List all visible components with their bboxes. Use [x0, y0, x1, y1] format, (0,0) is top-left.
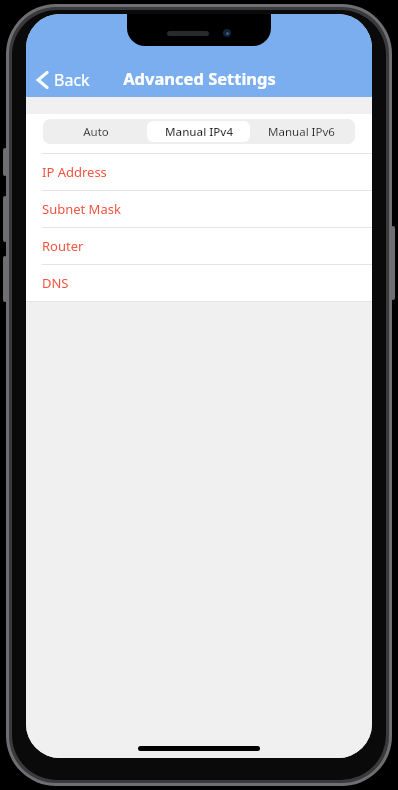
button[interactable]: Router — [26, 228, 372, 264]
button[interactable]: DNS — [26, 265, 372, 301]
staticText: Router — [42, 237, 84, 255]
staticText: Advanced Settings — [123, 67, 276, 89]
button[interactable]: Auto — [45, 121, 147, 142]
staticText: Back — [54, 69, 90, 91]
staticText: Subnet Mask — [42, 200, 121, 218]
staticText: IP Address — [42, 163, 107, 181]
staticText: DNS — [42, 274, 69, 292]
staticText: Manual IPv4 — [165, 124, 233, 140]
button[interactable]: Subnet Mask — [26, 191, 372, 227]
staticText: Auto — [83, 124, 109, 140]
button[interactable]: Manual IPv6 — [250, 121, 353, 142]
button[interactable]: IP Address — [26, 154, 372, 190]
button[interactable]: Manual IPv4 — [147, 121, 250, 142]
button[interactable]: Back — [26, 63, 100, 97]
staticText: Manual IPv6 — [268, 124, 335, 140]
